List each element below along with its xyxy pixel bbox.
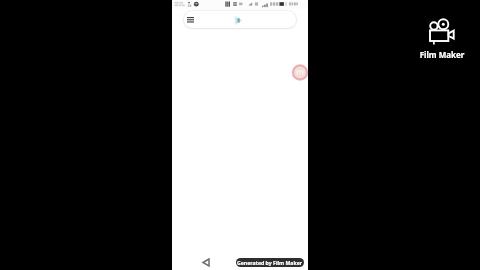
staticText: Film Maker xyxy=(414,49,470,60)
button[interactable]: Open navigation menu xyxy=(184,11,296,28)
button[interactable]: Generated by Film Maker xyxy=(236,258,304,267)
button[interactable]: Back xyxy=(197,254,213,270)
staticText: Generated by Film Maker xyxy=(237,259,303,266)
button[interactable]: Open navigation menu xyxy=(184,11,199,28)
